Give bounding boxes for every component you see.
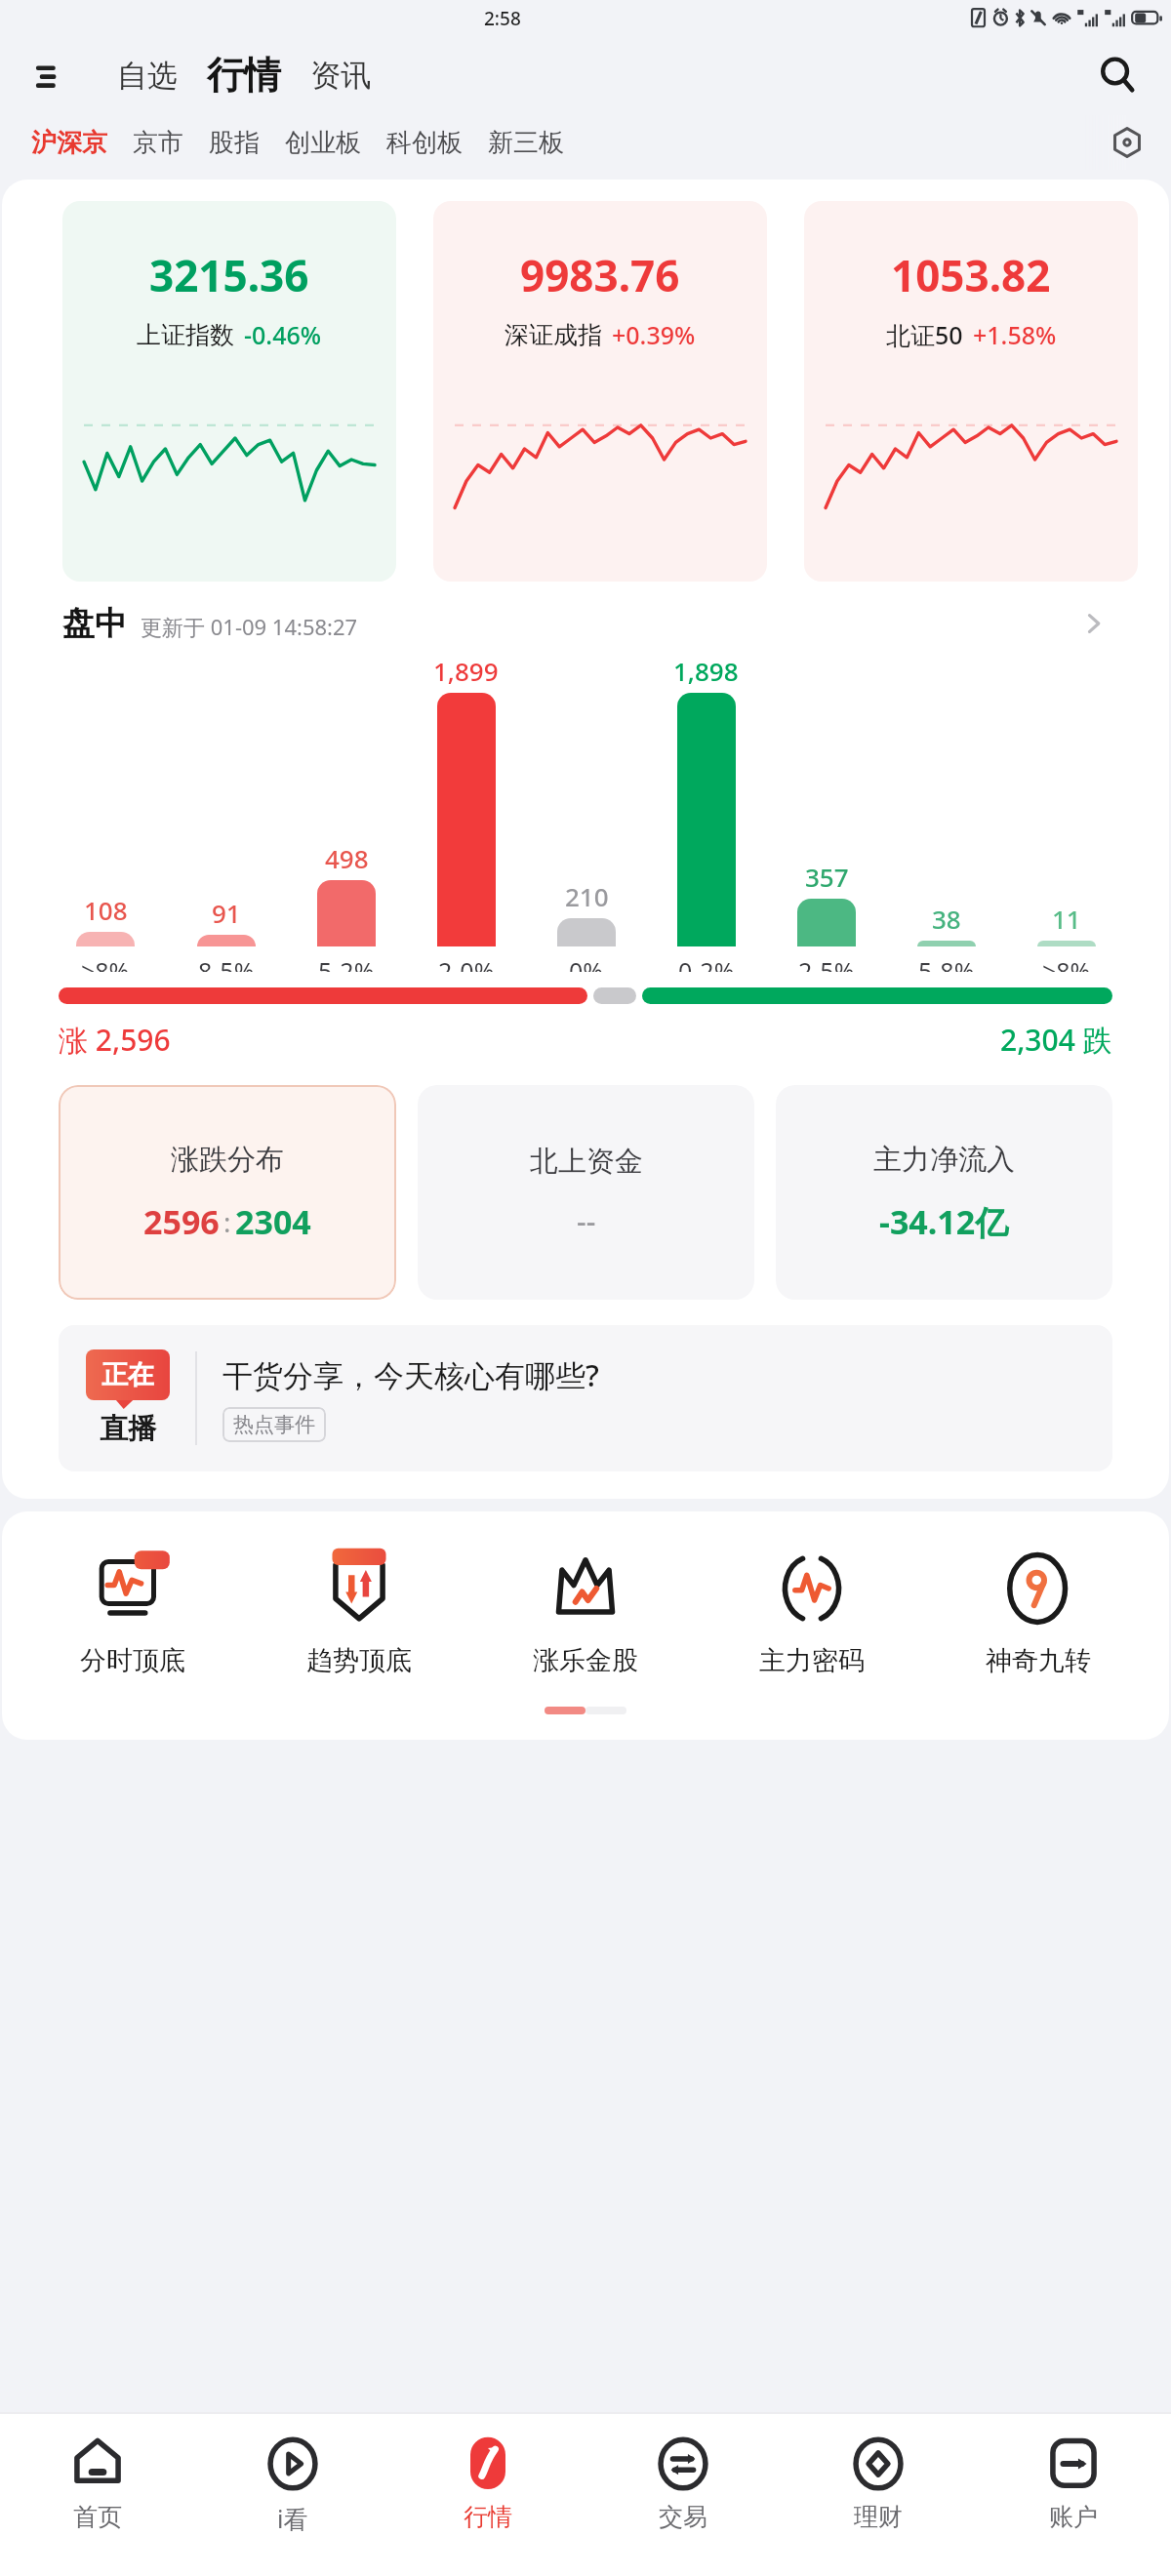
staticText: 涨 2,596 — [59, 1020, 171, 1060]
staticText: 深证成指 — [505, 320, 602, 350]
button[interactable]: 资讯 — [303, 51, 379, 101]
button[interactable]: 沪深京 — [21, 121, 117, 165]
staticText: 热点事件 — [233, 1412, 315, 1437]
staticText: 3215.36 — [149, 246, 309, 304]
button[interactable]: 涨跌分布 — [59, 1085, 396, 1300]
staticText: 新三板 — [488, 127, 564, 159]
staticText: 创业板 — [285, 127, 361, 159]
staticText: 自选 — [117, 57, 178, 95]
staticText: 首页 — [73, 2502, 122, 2532]
staticText: 1053.82 — [891, 246, 1051, 304]
button[interactable]: 主力净流入 — [776, 1085, 1112, 1300]
button[interactable]: 正在 — [59, 1325, 1112, 1471]
staticText: 北证50 — [886, 318, 963, 351]
button[interactable]: 行情 — [390, 2434, 585, 2576]
staticText: 涨跌分布 — [171, 1142, 284, 1178]
staticText: 交易 — [659, 2502, 707, 2532]
staticText: 357 — [805, 860, 849, 894]
button[interactable]: Search — [1087, 45, 1148, 105]
staticText: 主力密码 — [759, 1644, 865, 1677]
button[interactable]: Menu — [21, 47, 78, 103]
staticText: 1,899 — [433, 654, 499, 688]
button[interactable]: 京市 — [123, 121, 193, 165]
button[interactable]: 科创板 — [377, 121, 472, 165]
staticText: 91 — [212, 896, 241, 930]
button[interactable]: 3215.36 — [62, 201, 396, 582]
button[interactable]: 涨乐金股 — [472, 1547, 699, 1677]
staticText: 更新于 01-09 14:58:27 — [141, 612, 358, 641]
staticText: 2304 — [235, 1199, 311, 1244]
staticText: 1,898 — [673, 654, 739, 688]
staticText: 干货分享，今天核心有哪些? — [222, 1354, 599, 1395]
staticText: +0.39% — [612, 318, 696, 351]
staticText: 股指 — [209, 127, 260, 159]
staticText: 正在 — [101, 1358, 154, 1391]
staticText: : — [223, 1203, 231, 1240]
staticText: +1.58% — [973, 318, 1057, 351]
button[interactable]: 神奇九转 — [925, 1547, 1151, 1677]
button[interactable]: 创业板 — [275, 121, 371, 165]
staticText: 行情 — [207, 52, 281, 99]
staticText: 2:58 — [484, 6, 521, 31]
staticText: -- — [577, 1201, 596, 1241]
button[interactable]: 股指 — [199, 121, 269, 165]
staticText: -34.12亿 — [879, 1199, 1009, 1244]
button[interactable]: 趋势顶底 — [246, 1547, 472, 1677]
button[interactable]: 自选 — [107, 51, 187, 101]
button[interactable]: 新三板 — [478, 121, 574, 165]
staticText: 科创板 — [386, 127, 463, 159]
staticText: i看 — [277, 2502, 308, 2535]
staticText: 京市 — [133, 127, 183, 159]
button[interactable]: 1053.82 — [804, 201, 1138, 582]
staticText: 盘中 — [62, 603, 127, 644]
staticText: 2-0% — [438, 954, 495, 972]
button[interactable]: 理财 — [781, 2434, 976, 2576]
staticText: 上证指数 — [137, 320, 234, 350]
staticText: 0% — [569, 954, 604, 972]
button[interactable]: 行情 — [201, 48, 287, 102]
staticText: 资讯 — [310, 57, 371, 95]
button[interactable]: Settings — [1103, 118, 1151, 167]
button[interactable]: 盘中 — [62, 603, 1109, 644]
staticText: 直播 — [100, 1411, 156, 1447]
staticText: 主力净流入 — [873, 1142, 1015, 1178]
staticText: 2,304 跌 — [1000, 1020, 1112, 1060]
button[interactable]: 主力密码 — [699, 1547, 925, 1677]
button[interactable]: 首页 — [0, 2434, 195, 2576]
staticText: 108 — [84, 893, 128, 927]
staticText: 分时顶底 — [80, 1644, 185, 1677]
button[interactable]: 9983.76 — [433, 201, 767, 582]
button[interactable]: i看 — [195, 2434, 390, 2576]
staticText: >8% — [1042, 954, 1091, 972]
staticText: 行情 — [464, 2502, 512, 2532]
staticText: 210 — [565, 879, 609, 913]
staticText: 理财 — [854, 2502, 903, 2532]
staticText: 0-2% — [678, 954, 735, 972]
staticText: 涨乐金股 — [533, 1644, 638, 1677]
staticText: 5-2% — [318, 954, 375, 972]
staticText: 11 — [1052, 902, 1081, 936]
staticText: 5-8% — [918, 954, 975, 972]
staticText: 2-5% — [798, 954, 855, 972]
button[interactable]: 交易 — [585, 2434, 781, 2576]
button[interactable]: 分时顶底 — [20, 1547, 246, 1677]
staticText: 账户 — [1049, 2502, 1098, 2532]
staticText: >8% — [81, 954, 130, 972]
button[interactable]: 北上资金 — [418, 1085, 754, 1300]
staticText: 神奇九转 — [986, 1644, 1091, 1677]
staticText: 498 — [325, 841, 369, 875]
staticText: 趋势顶底 — [306, 1644, 412, 1677]
staticText: -0.46% — [244, 318, 322, 351]
staticText: 38 — [932, 902, 961, 936]
button[interactable]: 账户 — [976, 2434, 1171, 2576]
staticText: 北上资金 — [530, 1144, 643, 1180]
staticText: 8-5% — [198, 954, 255, 972]
staticText: 2596 — [143, 1199, 220, 1244]
staticText: 沪深京 — [31, 127, 107, 159]
staticText: 9983.76 — [520, 246, 680, 304]
